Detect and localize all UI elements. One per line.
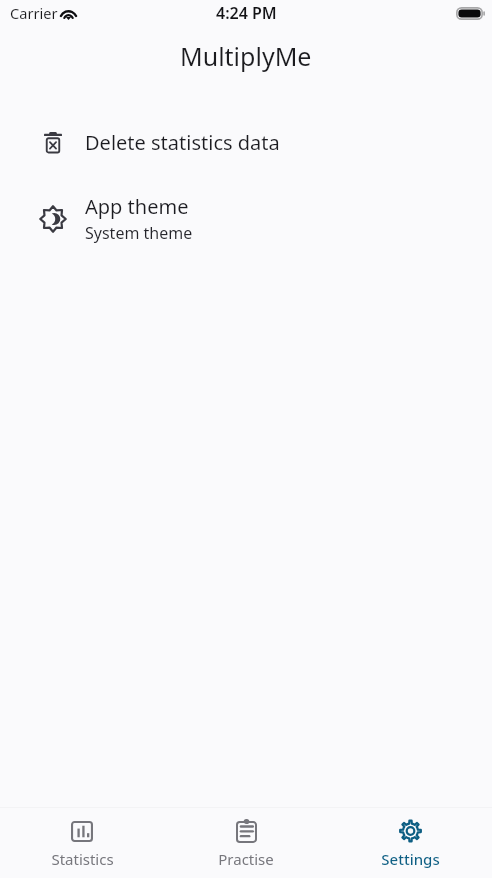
staticText: Delete statistics data bbox=[85, 129, 280, 156]
button[interactable]: Statistics bbox=[0, 809, 164, 877]
button[interactable]: Practise bbox=[164, 809, 328, 877]
staticText: Settings bbox=[381, 849, 440, 869]
staticText: Practise bbox=[218, 849, 274, 869]
staticText: Carrier bbox=[10, 3, 58, 23]
staticText: Statistics bbox=[51, 849, 114, 869]
staticText: MultiplyMe bbox=[180, 39, 312, 73]
button[interactable]: App theme bbox=[0, 185, 492, 252]
button[interactable]: Settings bbox=[328, 809, 492, 877]
staticText: System theme bbox=[85, 222, 193, 244]
staticText: App theme bbox=[85, 193, 189, 220]
staticText: 4:24 PM bbox=[216, 2, 277, 24]
button[interactable]: Delete statistics data bbox=[0, 120, 492, 164]
